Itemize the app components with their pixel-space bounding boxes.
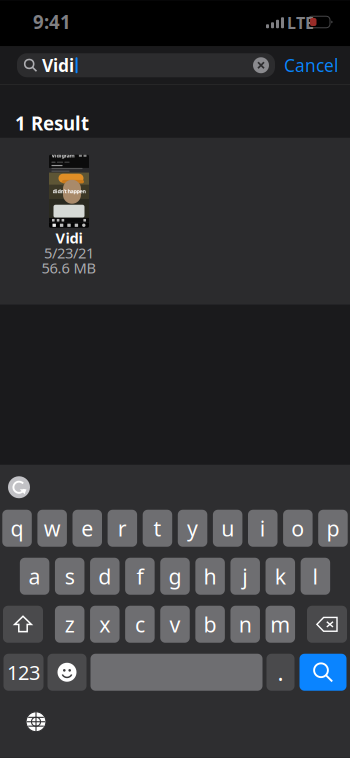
staticText: h [204, 562, 217, 590]
button[interactable]: Next keyboard [0, 691, 62, 738]
staticText: k [275, 562, 286, 590]
button[interactable]: Cancel [281, 49, 341, 81]
button[interactable]: p [318, 510, 348, 547]
button[interactable]: u [213, 510, 242, 547]
staticText: a [29, 562, 41, 590]
button[interactable]: Delete [307, 606, 347, 643]
button[interactable]: q [2, 510, 32, 547]
staticText: n [239, 610, 252, 638]
button[interactable]: k [265, 558, 295, 595]
button[interactable]: e [72, 510, 102, 547]
button[interactable]: r [108, 510, 137, 547]
staticText: Vidi [55, 228, 82, 247]
button[interactable]: m [266, 606, 295, 643]
button[interactable]: Vidigram [0, 138, 350, 305]
button[interactable]: v [160, 606, 190, 643]
staticText: s [65, 562, 75, 590]
button[interactable]: Space [90, 654, 262, 691]
button[interactable]: x [90, 606, 120, 643]
button[interactable]: Shift [3, 606, 43, 643]
button[interactable]: a [20, 558, 49, 595]
staticText: . [277, 657, 283, 687]
button[interactable]: h [195, 558, 225, 595]
button[interactable]: g [160, 558, 190, 595]
button[interactable]: l [301, 558, 330, 595]
staticText: u [221, 514, 234, 542]
staticText: f [136, 562, 143, 590]
staticText: Vidigram [51, 152, 74, 159]
staticText: c [135, 610, 145, 638]
staticText: 56.6 MB [41, 258, 96, 277]
button[interactable]: n [230, 606, 260, 643]
staticText: e [81, 514, 93, 542]
staticText: Vidi [42, 54, 74, 77]
button[interactable]: i [248, 510, 277, 547]
button[interactable]: Clear text [249, 53, 275, 77]
button[interactable]: f [125, 558, 155, 595]
button[interactable]: 123 [3, 654, 43, 691]
staticText: q [11, 514, 24, 542]
staticText: b [204, 610, 217, 638]
button[interactable]: d [90, 558, 119, 595]
staticText: i [260, 514, 266, 542]
staticText: z [65, 610, 75, 638]
staticText: d [98, 562, 111, 590]
button[interactable]: c [125, 606, 155, 643]
button[interactable]: w [37, 510, 67, 547]
staticText: p [326, 514, 339, 542]
staticText: v [169, 610, 180, 638]
button[interactable]: Search [299, 654, 346, 691]
staticText: l [312, 562, 318, 590]
staticText: t [153, 514, 161, 542]
button[interactable]: s [55, 558, 84, 595]
button[interactable]: t [143, 510, 172, 547]
button[interactable]: Emoji [47, 654, 86, 691]
staticText: o [291, 514, 304, 542]
staticText: j [242, 562, 248, 590]
staticText: m [270, 610, 290, 638]
button[interactable]: b [195, 606, 225, 643]
button[interactable]: o [283, 510, 313, 547]
staticText: r [118, 514, 127, 542]
staticText: y [187, 514, 198, 542]
staticText: 5/23/21 [44, 243, 94, 262]
button[interactable]: z [55, 606, 84, 643]
staticText: 123 [7, 659, 40, 686]
staticText: g [168, 562, 181, 590]
staticText: LTE [287, 12, 314, 33]
button[interactable]: Undo [0, 465, 38, 510]
button[interactable]: y [178, 510, 207, 547]
staticText: w [44, 514, 61, 542]
staticText: didn't happen [52, 188, 85, 195]
staticText: 1 Result [15, 111, 89, 136]
staticText: Cancel [284, 54, 338, 77]
staticText: x [99, 610, 110, 638]
button[interactable]: j [230, 558, 260, 595]
staticText: 9:41 [33, 9, 71, 34]
button[interactable]: . [266, 654, 294, 691]
